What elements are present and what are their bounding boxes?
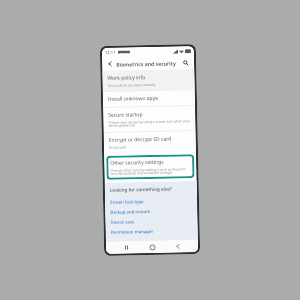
staticText: Install unknown apps bbox=[108, 95, 159, 103]
button[interactable]: Other security settings bbox=[106, 154, 195, 180]
button[interactable]: Install unknown apps bbox=[103, 90, 195, 107]
staticText: Other security settings bbox=[110, 159, 164, 167]
button[interactable]: Work policy info bbox=[102, 69, 195, 91]
button[interactable]: Home bbox=[146, 241, 158, 253]
staticText: Backup and restore bbox=[110, 208, 150, 215]
button[interactable]: Recents bbox=[120, 241, 132, 254]
staticText: Screen lock type bbox=[110, 198, 144, 205]
staticText: Biometrics and security bbox=[116, 59, 176, 68]
button[interactable]: Permission manager bbox=[111, 225, 193, 237]
staticText: Work policy info bbox=[107, 74, 145, 82]
staticText: Secure startup bbox=[108, 111, 143, 119]
staticText: Protect your device by using a screen lo… bbox=[108, 118, 190, 128]
button[interactable]: Backup and restore bbox=[110, 205, 192, 217]
staticText: Looking for something else? bbox=[110, 185, 173, 193]
staticText: Your policies are used carefully bbox=[108, 82, 156, 87]
button[interactable]: Search bbox=[181, 58, 190, 67]
button[interactable]: Device care bbox=[110, 215, 193, 227]
staticText: Change other security settings, such as … bbox=[110, 166, 190, 176]
button[interactable]: Back bbox=[106, 60, 114, 68]
staticText: No SD card bbox=[109, 144, 127, 149]
staticText: Permission manager bbox=[111, 228, 154, 235]
button[interactable]: Screen lock type bbox=[110, 195, 192, 207]
button[interactable]: Secure startup bbox=[103, 106, 196, 132]
button[interactable]: Encrypt or decrypt SD card bbox=[104, 131, 196, 153]
staticText: Device care bbox=[110, 218, 134, 225]
staticText: Encrypt or decrypt SD card bbox=[109, 135, 172, 144]
staticText: 12:11 bbox=[105, 50, 116, 55]
button[interactable]: Back bbox=[172, 240, 184, 252]
